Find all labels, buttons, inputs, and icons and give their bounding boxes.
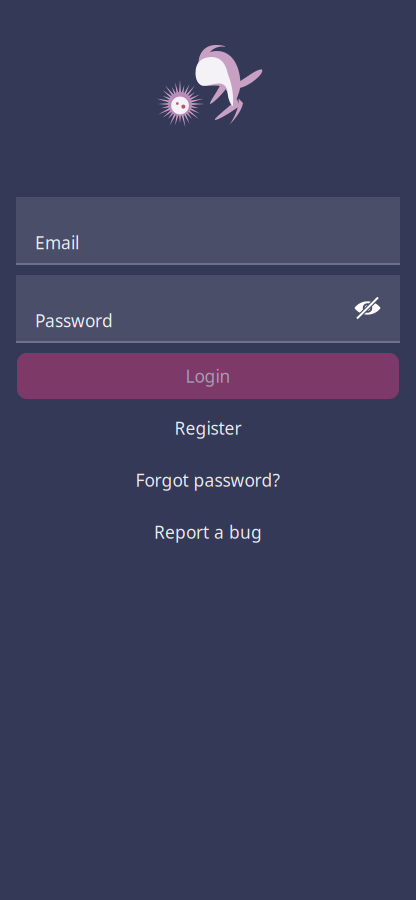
button[interactable]: Login [16, 353, 400, 399]
button[interactable]: Show password [342, 282, 400, 333]
staticText: Register [174, 416, 241, 439]
button[interactable]: Forgot password? [0, 454, 416, 506]
staticText: Password [35, 309, 113, 332]
staticText: Login [185, 364, 230, 387]
button[interactable]: Report a bug [0, 506, 416, 558]
button[interactable]: Register [0, 402, 416, 454]
staticText: Report a bug [154, 520, 262, 543]
staticText: Email [35, 231, 79, 254]
staticText: Forgot password? [135, 468, 280, 491]
